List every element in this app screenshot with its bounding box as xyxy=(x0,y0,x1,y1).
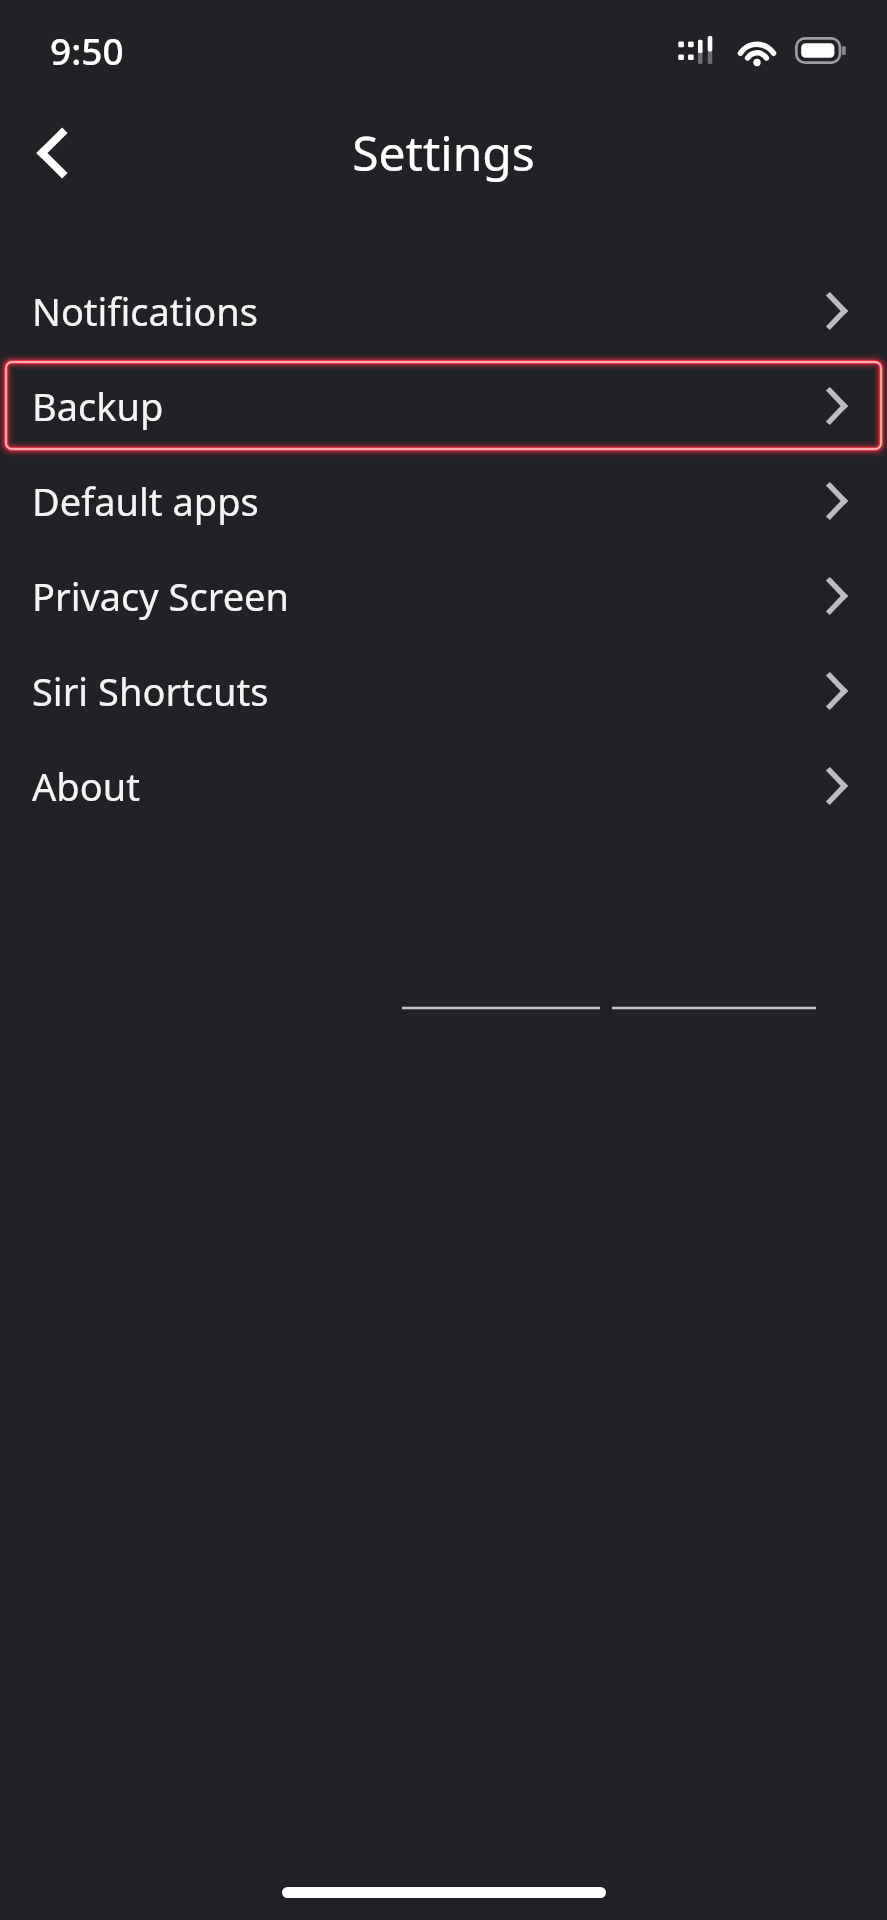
staticText: Backup xyxy=(32,380,164,432)
button[interactable]: Back xyxy=(12,113,92,193)
button[interactable]: Backup xyxy=(0,358,887,453)
staticText: Privacy Screen xyxy=(32,570,289,622)
button[interactable]: Notifications xyxy=(0,263,887,358)
staticText: 9:50 xyxy=(50,25,124,75)
other: Open xyxy=(817,671,857,711)
staticText: Default apps xyxy=(32,475,259,527)
button[interactable]: Siri Shortcuts xyxy=(0,643,887,738)
button[interactable]: Privacy Screen xyxy=(0,548,887,643)
button[interactable]: About xyxy=(0,738,887,833)
button[interactable]: Default apps xyxy=(0,453,887,548)
staticText: Siri Shortcuts xyxy=(32,665,269,717)
staticText: About xyxy=(32,760,140,812)
staticText: Notifications xyxy=(32,285,259,337)
other: Open xyxy=(817,576,857,616)
other: Open xyxy=(817,386,857,426)
other: Open xyxy=(817,291,857,331)
other: Open xyxy=(817,481,857,521)
other: Open xyxy=(817,766,857,806)
staticText: Settings xyxy=(352,120,535,185)
